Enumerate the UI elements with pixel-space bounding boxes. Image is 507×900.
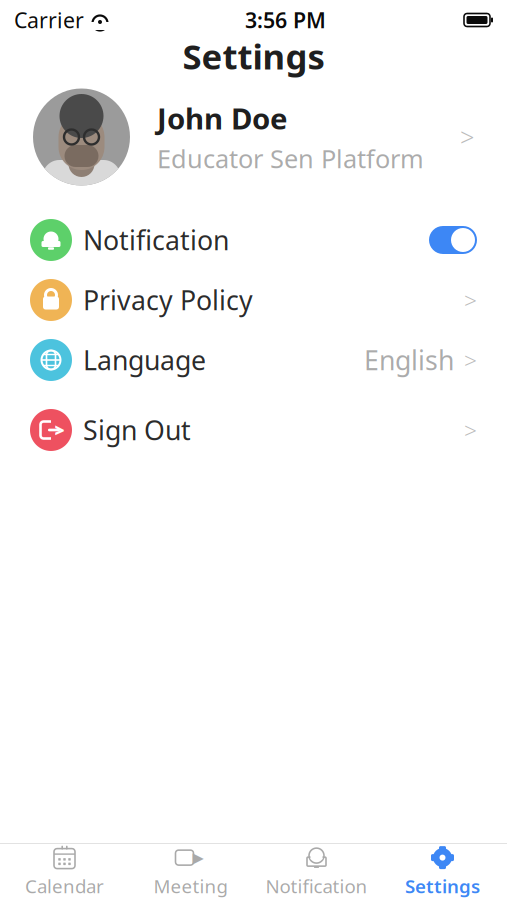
staticText: > [460, 120, 474, 154]
staticText: English [364, 342, 454, 378]
staticText: Settings [405, 874, 480, 898]
staticText: Educator Sen Platform [157, 142, 424, 175]
button[interactable]: > [0, 400, 507, 460]
staticText: Meeting [153, 874, 227, 898]
staticText: Language [83, 342, 206, 378]
staticText: > [464, 415, 477, 445]
staticText: ▶ [192, 849, 203, 866]
staticText: Sign Out [83, 412, 191, 448]
staticText: Settings [182, 33, 324, 79]
button[interactable]: John Doe [0, 82, 507, 192]
staticText: Privacy Policy [83, 282, 253, 318]
button[interactable]: ▶ [127, 844, 253, 900]
staticText: Carrier [14, 6, 84, 34]
button[interactable]: Settings [379, 844, 505, 900]
staticText: John Doe [157, 99, 288, 138]
button[interactable]: Notification [253, 844, 379, 900]
button[interactable]: Privacy Policy [0, 270, 507, 330]
button[interactable]: Notification [0, 210, 507, 270]
staticText: Notification [265, 874, 367, 898]
button[interactable]: Language [0, 330, 507, 390]
staticText: > [54, 418, 64, 441]
staticText: Notification [83, 222, 229, 258]
staticText: 3:56 PM [245, 6, 326, 34]
staticText: > [464, 285, 477, 315]
button[interactable]: Calendar [1, 844, 127, 900]
staticText: Calendar [25, 874, 104, 898]
staticText: > [464, 345, 477, 375]
